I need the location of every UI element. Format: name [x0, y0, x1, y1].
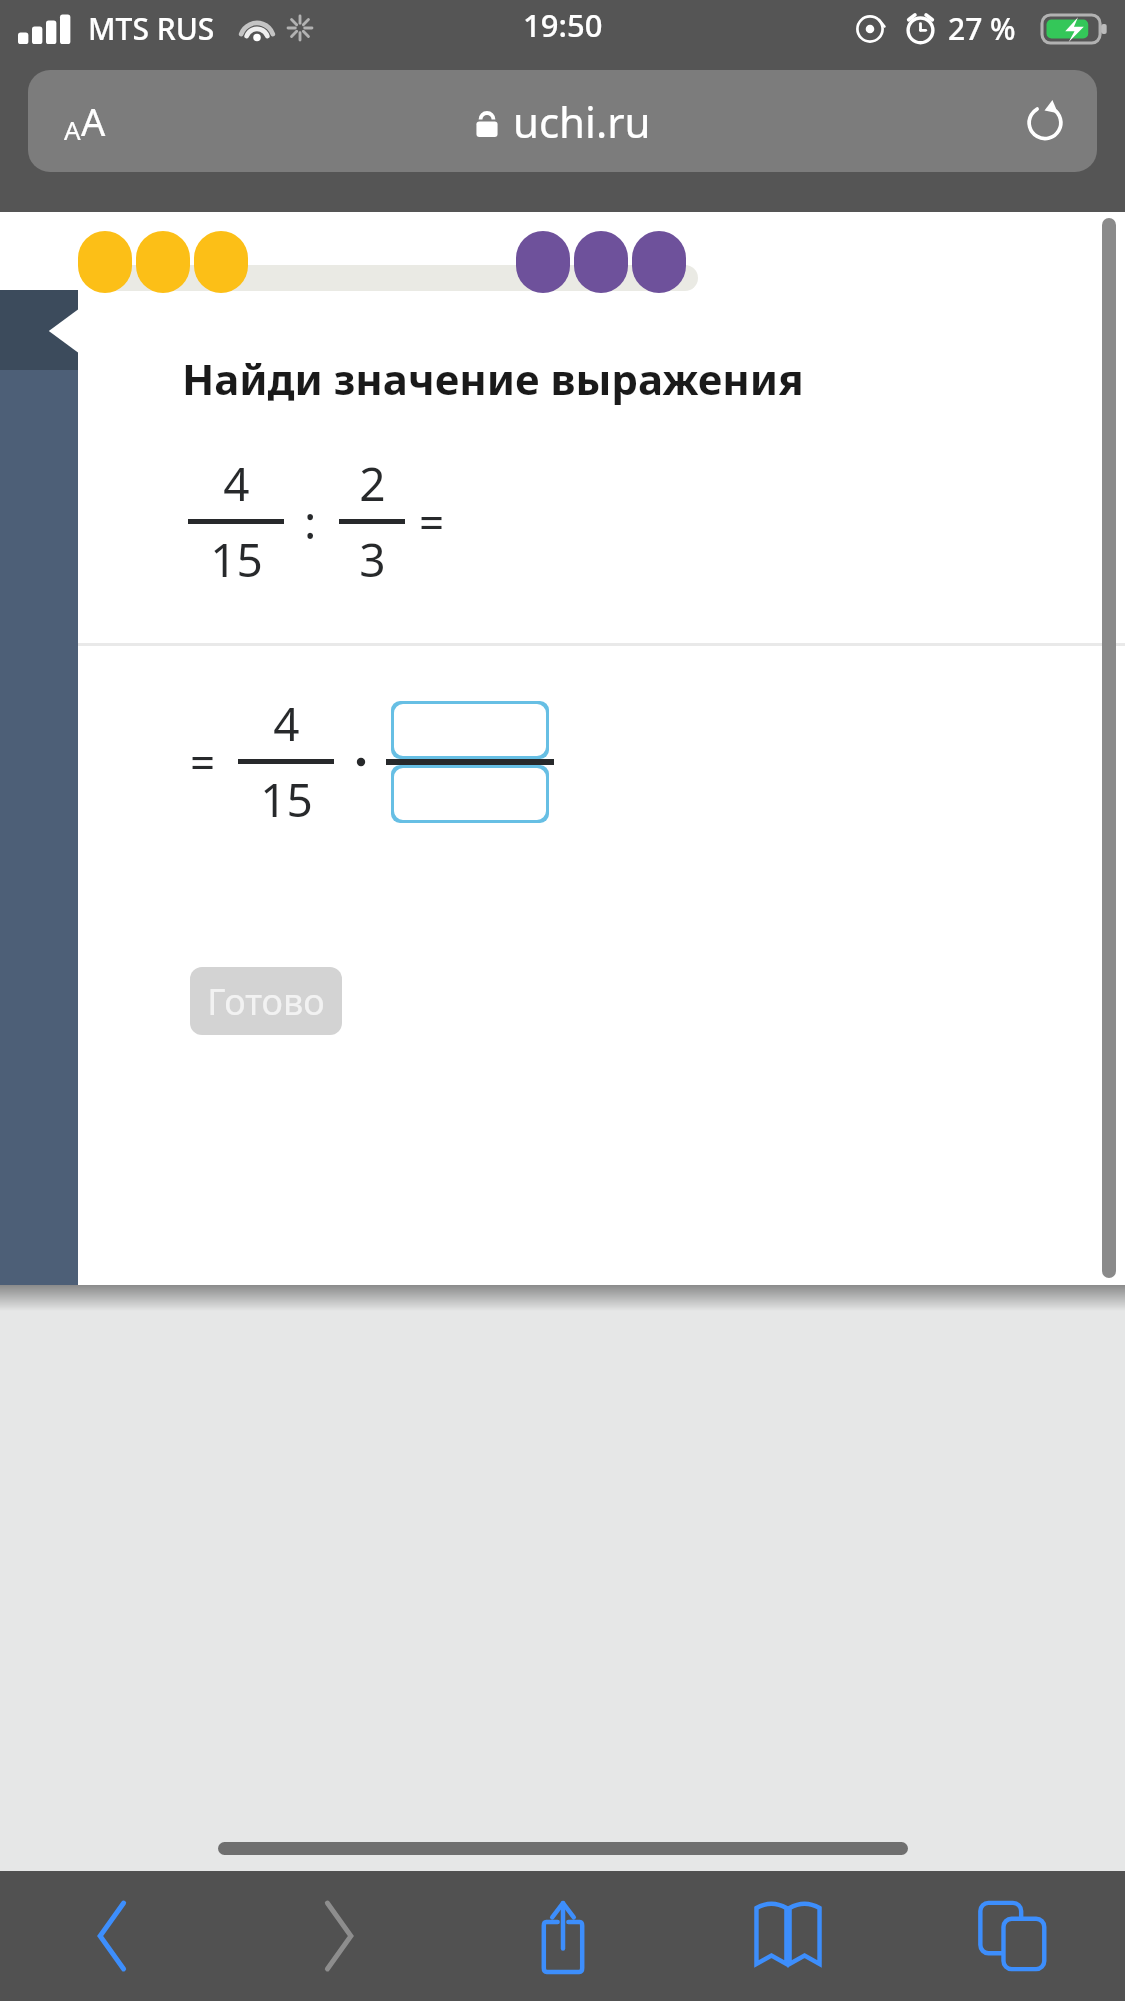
button[interactable]: Готово	[190, 967, 342, 1035]
staticText: :	[304, 490, 317, 553]
staticText: 3	[359, 528, 386, 591]
staticText: 15	[260, 768, 313, 831]
staticText: =	[419, 492, 445, 552]
button[interactable]: Answer field	[391, 765, 549, 823]
button[interactable]: Text size	[56, 87, 114, 155]
staticText: 15	[210, 528, 263, 591]
button[interactable]: Menu	[0, 290, 78, 1285]
staticText: =	[190, 732, 216, 792]
button[interactable]: Bookmarks	[675, 1871, 900, 2001]
button[interactable]: Back	[0, 1871, 225, 2001]
staticText: 4	[273, 692, 300, 755]
staticText: uchi.ru	[513, 93, 651, 150]
button[interactable]: Share	[450, 1871, 675, 2001]
staticText: Готово	[207, 977, 325, 1026]
staticText: MTS RUS	[88, 8, 215, 49]
staticText: A	[64, 112, 81, 147]
button[interactable]: Reload	[1017, 93, 1073, 149]
staticText: 4	[223, 452, 250, 515]
button[interactable]: Answer field	[391, 701, 549, 759]
button[interactable]: Forward	[225, 1871, 450, 2001]
staticText: 2	[359, 452, 386, 515]
staticText: 27 %	[948, 8, 1016, 49]
button[interactable]: Text size	[28, 70, 1097, 172]
staticText: A	[81, 95, 106, 147]
staticText: Найди значение выражения	[182, 350, 804, 407]
button[interactable]: Tabs	[900, 1871, 1125, 2001]
staticText: 19:50	[523, 4, 603, 46]
